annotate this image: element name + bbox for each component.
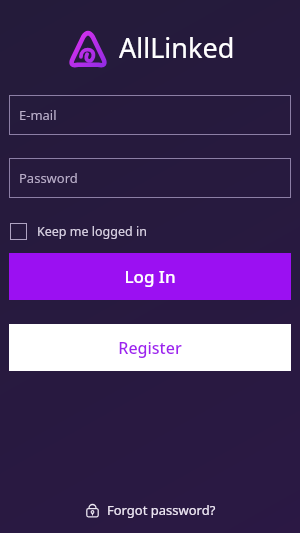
- button[interactable]: Forgot password: [85, 501, 216, 519]
- button[interactable]: Log In: [9, 253, 291, 300]
- button[interactable]: Password: [9, 158, 291, 198]
- other: Forgot password: [85, 503, 100, 518]
- button[interactable]: E-mail: [9, 95, 291, 135]
- button[interactable]: Register: [9, 324, 291, 371]
- staticText: AllLinked: [119, 29, 235, 66]
- staticText: Log In: [124, 265, 176, 288]
- button[interactable]: Keep me logged in: [10, 216, 147, 246]
- staticText: Register: [118, 337, 182, 359]
- staticText: Keep me logged in: [37, 223, 147, 240]
- staticText: Password: [19, 169, 78, 187]
- staticText: E-mail: [19, 106, 57, 124]
- staticText: Forgot password?: [107, 501, 216, 519]
